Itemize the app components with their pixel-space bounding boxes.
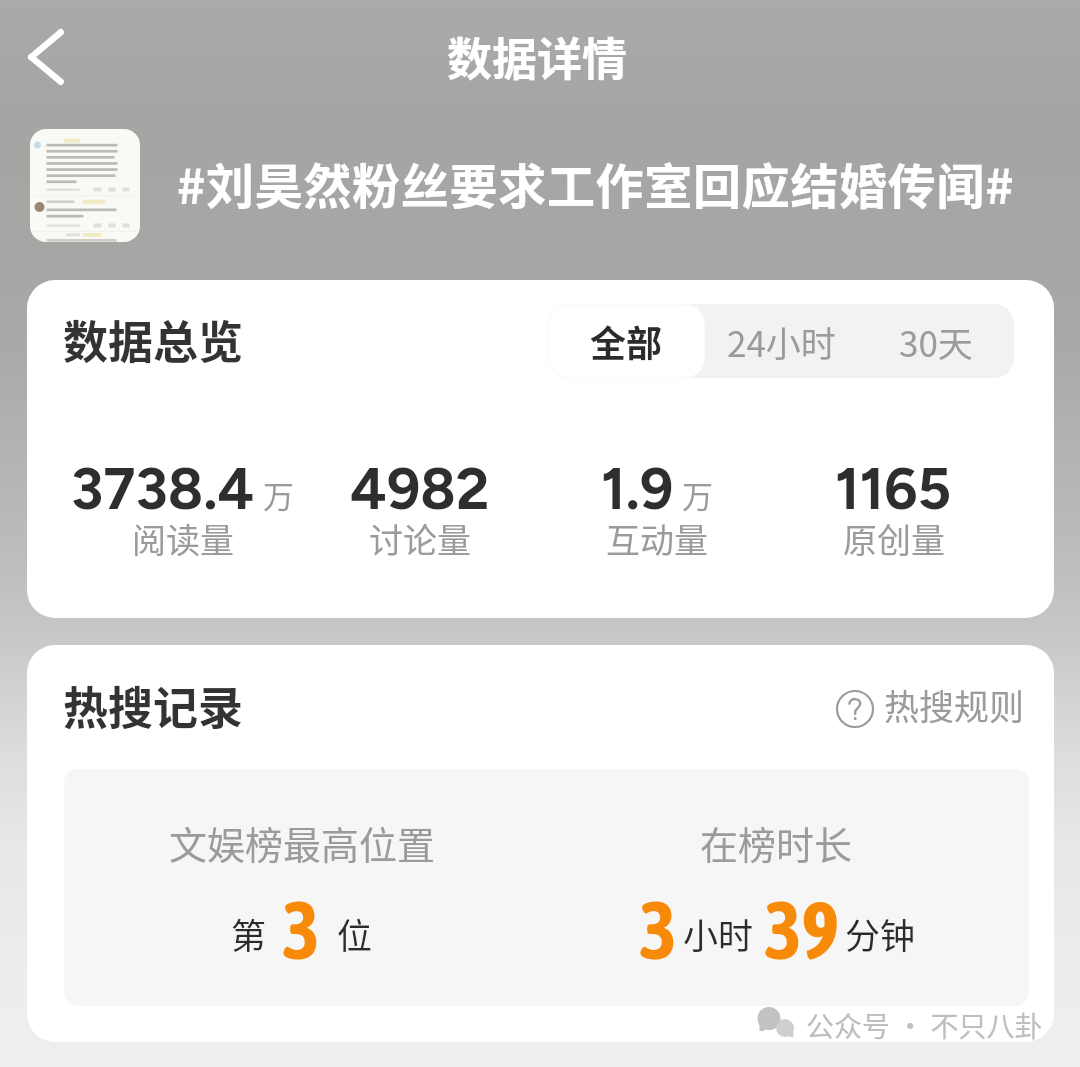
button[interactable]: 1.9 <box>538 454 775 573</box>
staticText: 文娱榜最高位置 <box>169 815 436 870</box>
staticText: 3 <box>639 884 677 976</box>
staticText: 讨论量 <box>369 514 471 563</box>
staticText: 公众号 · 不只八卦 <box>806 1005 1043 1046</box>
staticText: #刘昊然粉丝要求工作室回应结婚传闻# <box>177 148 1015 218</box>
staticText: 万 <box>682 472 713 517</box>
staticText: 数据详情 <box>0 24 1077 89</box>
staticText: 第 <box>231 908 267 959</box>
staticText: 1165 <box>835 454 952 524</box>
button[interactable]: 24小时 <box>705 304 857 378</box>
button[interactable]: 3738.4 <box>64 454 301 573</box>
staticText: 4982 <box>350 454 490 524</box>
staticText: 全部 <box>590 315 663 367</box>
button[interactable]: 热搜规则 <box>827 675 1031 742</box>
button[interactable]: Post preview <box>30 129 140 242</box>
staticText: 24小时 <box>727 316 836 367</box>
staticText: 原创量 <box>843 514 945 563</box>
button[interactable]: 全部 <box>549 305 704 377</box>
button[interactable]: 1165 <box>775 454 1012 573</box>
staticText: 热搜记录 <box>63 673 244 738</box>
button[interactable]: 30天 <box>857 304 1014 378</box>
staticText: 30天 <box>899 316 973 367</box>
staticText: 1.9 <box>601 454 674 524</box>
staticText: 分钟 <box>845 908 916 959</box>
staticText: 数据总览 <box>63 307 244 372</box>
staticText: 3738.4 <box>71 454 255 524</box>
staticText: 阅读量 <box>132 514 234 563</box>
staticText: 万 <box>263 472 294 517</box>
button[interactable]: Back <box>6 20 78 92</box>
button[interactable]: 4982 <box>301 454 538 573</box>
staticText: 39 <box>764 884 840 976</box>
staticText: 热搜规则 <box>884 679 1025 730</box>
staticText: 互动量 <box>606 514 708 563</box>
staticText: 在榜时长 <box>700 815 853 870</box>
staticText: 位 <box>337 908 373 959</box>
staticText: 小时 <box>683 908 754 959</box>
staticText: 3 <box>282 884 320 976</box>
